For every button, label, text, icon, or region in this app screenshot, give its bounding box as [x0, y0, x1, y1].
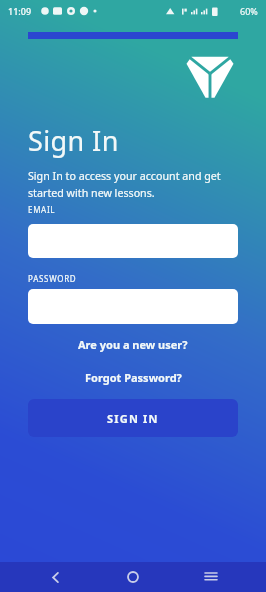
staticText: Sign In to access your account and get s…	[28, 169, 221, 200]
button[interactable]: Forgot Password?	[28, 370, 238, 385]
staticText: 11:09	[8, 5, 32, 17]
staticText: 60%	[240, 5, 258, 17]
staticText: Are you a new user?	[78, 337, 188, 352]
button[interactable]: SIGN IN	[28, 399, 238, 437]
button[interactable]	[28, 289, 238, 324]
staticText: PASSWORD	[28, 273, 77, 284]
staticText: SIGN IN	[107, 411, 159, 426]
staticText: EMAIL	[28, 204, 56, 215]
button[interactable]	[16, 562, 94, 592]
staticText: Forgot Password?	[85, 370, 182, 385]
button[interactable]: Are you a new user?	[28, 337, 238, 352]
button[interactable]	[172, 562, 250, 592]
button[interactable]	[94, 562, 172, 592]
button[interactable]	[28, 224, 238, 258]
staticText: Sign In	[28, 122, 119, 159]
